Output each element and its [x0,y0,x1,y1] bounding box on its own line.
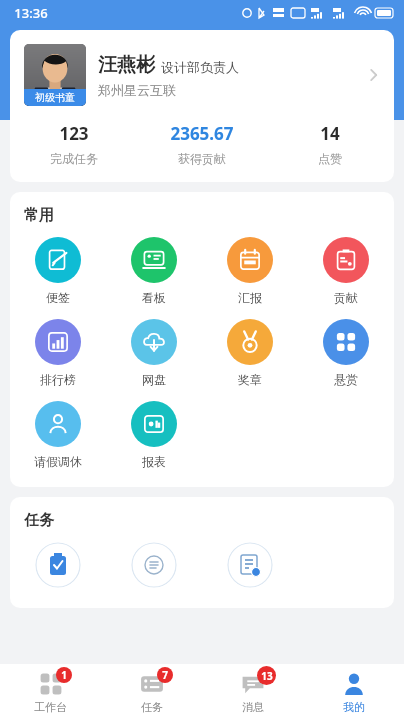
button[interactable]: 已完成 [202,542,298,588]
button[interactable]: 进行中 [106,542,202,588]
staticText: 我的 [343,700,365,714]
staticText: 2365.67 [170,122,234,145]
staticText: 1 [61,668,67,682]
staticText: 汪燕彬 [98,53,155,77]
button[interactable]: 14 [266,122,394,166]
staticText: 排行榜 [40,372,76,387]
staticText: 报表 [142,454,166,469]
staticText: 14 [320,122,340,145]
button[interactable]: 2365.67 [138,122,266,166]
button[interactable]: 网盘 [106,319,202,387]
staticText: 便签 [46,290,70,305]
staticText: 任务 [141,700,163,714]
button[interactable]: 悬赏 [298,319,394,387]
button[interactable]: 123 [10,122,138,166]
staticText: 常用 [24,206,54,225]
staticText: 贡献 [334,290,358,305]
button[interactable]: 1 [0,664,101,720]
staticText: 13 [261,669,273,683]
staticText: 点赞 [318,151,342,166]
button[interactable]: 13 [202,664,303,720]
staticText: 工作台 [34,700,67,714]
staticText: 看板 [142,290,166,305]
staticText: 悬赏 [334,372,358,387]
staticText: 汇报 [238,290,262,305]
button[interactable]: 看板 [106,237,202,305]
staticText: 13:36 [14,4,48,22]
button[interactable]: 汇报 [202,237,298,305]
button[interactable]: 待办任务 [10,542,106,588]
button[interactable]: 请假调休 [10,401,106,469]
staticText: 123 [59,122,89,145]
button[interactable]: 报表 [106,401,202,469]
button[interactable]: 贡献 [298,237,394,305]
button[interactable]: 排行榜 [10,319,106,387]
staticText: 请假调休 [34,454,82,469]
staticText: 郑州星云互联 [98,82,176,98]
staticText: 完成任务 [50,151,98,166]
button[interactable]: 7 [101,664,202,720]
staticText: 消息 [242,700,264,714]
staticText: 任务 [24,511,54,530]
staticText: 初级书童 [35,91,75,104]
staticText: 7 [162,668,168,682]
staticText: 获得贡献 [178,151,226,166]
staticText: 网盘 [142,372,166,387]
staticText: 奖章 [238,372,262,387]
button[interactable]: 初级书童 [10,30,394,112]
staticText: 设计部负责人 [161,59,239,75]
button[interactable]: 奖章 [202,319,298,387]
button[interactable]: 我的 [303,664,404,720]
button[interactable]: 便签 [10,237,106,305]
